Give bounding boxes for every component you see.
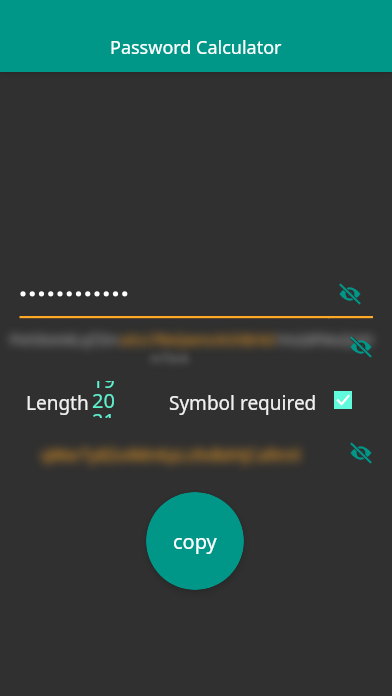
staticText: 20: [92, 387, 115, 414]
staticText: Length: [26, 390, 89, 416]
button[interactable]: Password length: [92, 381, 120, 418]
staticText: mTbnk: [150, 350, 190, 366]
button[interactable]: Toggle password visibility: [338, 282, 362, 306]
staticText: 21: [92, 407, 115, 418]
staticText: copy: [173, 528, 217, 555]
button[interactable]: Symbol required: [331, 388, 354, 411]
staticText: qWerTy8Zx4MnKpLs9vBdHjCaRmX: [41, 444, 301, 466]
button[interactable]: copy: [146, 492, 244, 590]
staticText: 19: [92, 381, 115, 394]
staticText: Symbol required: [169, 390, 317, 416]
staticText: aXcv7ReQwmz4UhBrKd: [120, 330, 276, 349]
staticText: Ym2dPlAsQnXr: [276, 330, 375, 349]
button[interactable]: Toggle visibility: [349, 441, 373, 465]
staticText: PvH3nmKLqTZm: [10, 330, 120, 349]
button[interactable]: Toggle visibility: [349, 335, 373, 359]
button[interactable]: Master password field: [19, 276, 329, 319]
staticText: Password Calculator: [110, 35, 282, 60]
